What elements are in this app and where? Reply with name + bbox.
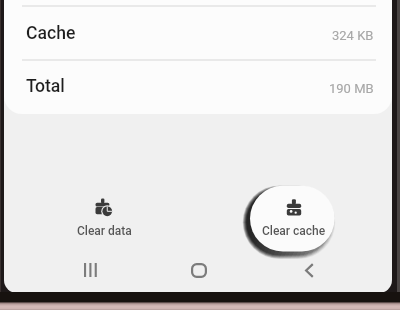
staticText: Clear cache (262, 224, 326, 238)
staticText: 190 MB (329, 81, 374, 96)
button[interactable]: Clear data (8, 185, 198, 251)
button[interactable]: Home (179, 250, 219, 290)
button[interactable]: Cache (4, 7, 392, 59)
button[interactable]: Back (289, 250, 329, 290)
staticText: Total (26, 76, 65, 97)
staticText: Cache (26, 23, 76, 44)
staticText: Clear data (77, 224, 132, 238)
button[interactable]: Total (4, 61, 392, 114)
staticText: 324 KB (332, 28, 374, 43)
button[interactable]: Clear cache (202, 185, 392, 251)
button[interactable]: Recent apps (70, 250, 110, 290)
